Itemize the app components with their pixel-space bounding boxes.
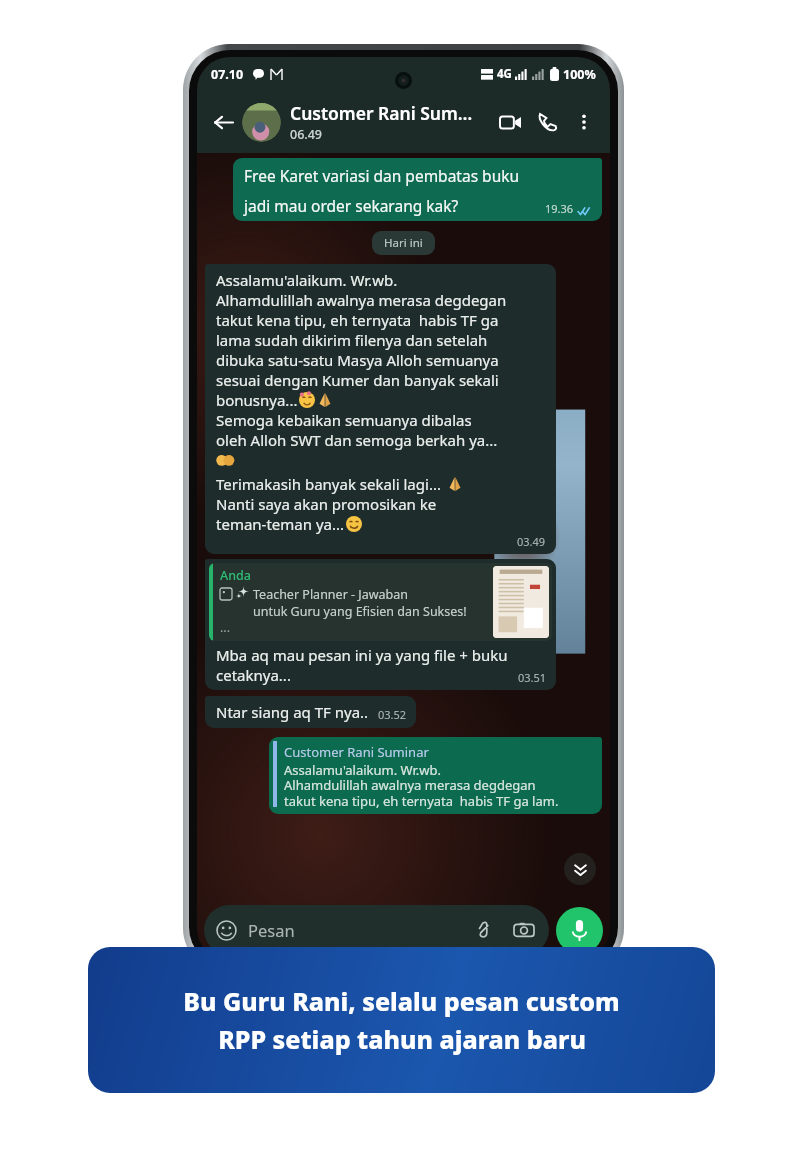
staticText: 07.10 (211, 66, 244, 83)
staticText: Free Karet variasi dan pembatas buku (244, 165, 520, 186)
button[interactable]: Customer Rani Suminar (269, 737, 602, 814)
staticText: Semoga kebaikan semuanya dibalas oleh Al… (216, 410, 498, 450)
staticText: 06.49 (290, 126, 323, 143)
staticText: jadi mau order sekarang kak? (244, 195, 459, 216)
button[interactable]: Attach (471, 917, 497, 943)
staticText: 03.52 (378, 707, 407, 722)
button[interactable]: Free Karet variasi dan pembatas buku (233, 158, 602, 221)
staticText: Mba aq mau pesan ini ya yang file + buku (216, 645, 508, 665)
staticText: 03.51 (518, 670, 547, 685)
staticText: Customer Rani Suminar (284, 743, 429, 761)
button[interactable]: Assalamu'alaikum. Wr.wb. Alhamdulillah a… (205, 264, 556, 554)
staticText: Terimakasih banyak sekali lagi... (216, 474, 441, 494)
staticText: Bu Guru Rani, selalu pesan custom (183, 984, 620, 1018)
button[interactable]: Video call (491, 103, 529, 141)
button[interactable]: Camera (511, 917, 537, 943)
staticText: Anda (220, 567, 251, 584)
staticText: Hari ini (384, 235, 423, 251)
button[interactable] (242, 103, 281, 142)
staticText: 19.36 (545, 201, 574, 216)
staticText: Customer Rani Sum… (290, 101, 473, 125)
button[interactable]: Back (206, 105, 240, 139)
staticText: Assalamu'alaikum. Wr.wb. Alhamdulillah a… (216, 270, 507, 390)
staticText: bonusnya... (216, 390, 298, 410)
staticText: 4G (497, 66, 512, 82)
staticText: ... (220, 619, 231, 636)
staticText: teman-teman ya... (216, 514, 345, 534)
button[interactable]: Voice message (556, 907, 603, 954)
button[interactable]: Bu Guru Rani, selalu pesan custom (88, 947, 715, 1093)
staticText: Teacher Planner - Jawaban untuk Guru yan… (253, 586, 467, 619)
button[interactable]: Hari ini (372, 231, 435, 255)
button[interactable]: Ntar siang aq TF nya.. (205, 696, 416, 728)
staticText: Nanti saya akan promosikan ke (216, 494, 437, 514)
staticText: Pesan (248, 919, 295, 941)
button[interactable]: Voice call (529, 103, 567, 141)
button[interactable]: More options (567, 105, 601, 139)
staticText: cetaknya... (216, 665, 291, 685)
button[interactable]: Pesan (204, 905, 549, 955)
staticText: 100% (563, 66, 596, 83)
staticText: Assalamu'alaikum. Wr.wb. Alhamdulillah a… (284, 761, 559, 810)
button[interactable]: Scroll to bottom (564, 853, 596, 885)
staticText: RPP setiap tahun ajaran baru (218, 1022, 586, 1056)
button[interactable]: Anda (205, 559, 556, 690)
staticText: 03.49 (517, 534, 546, 549)
staticText: Ntar siang aq TF nya.. (216, 702, 369, 722)
